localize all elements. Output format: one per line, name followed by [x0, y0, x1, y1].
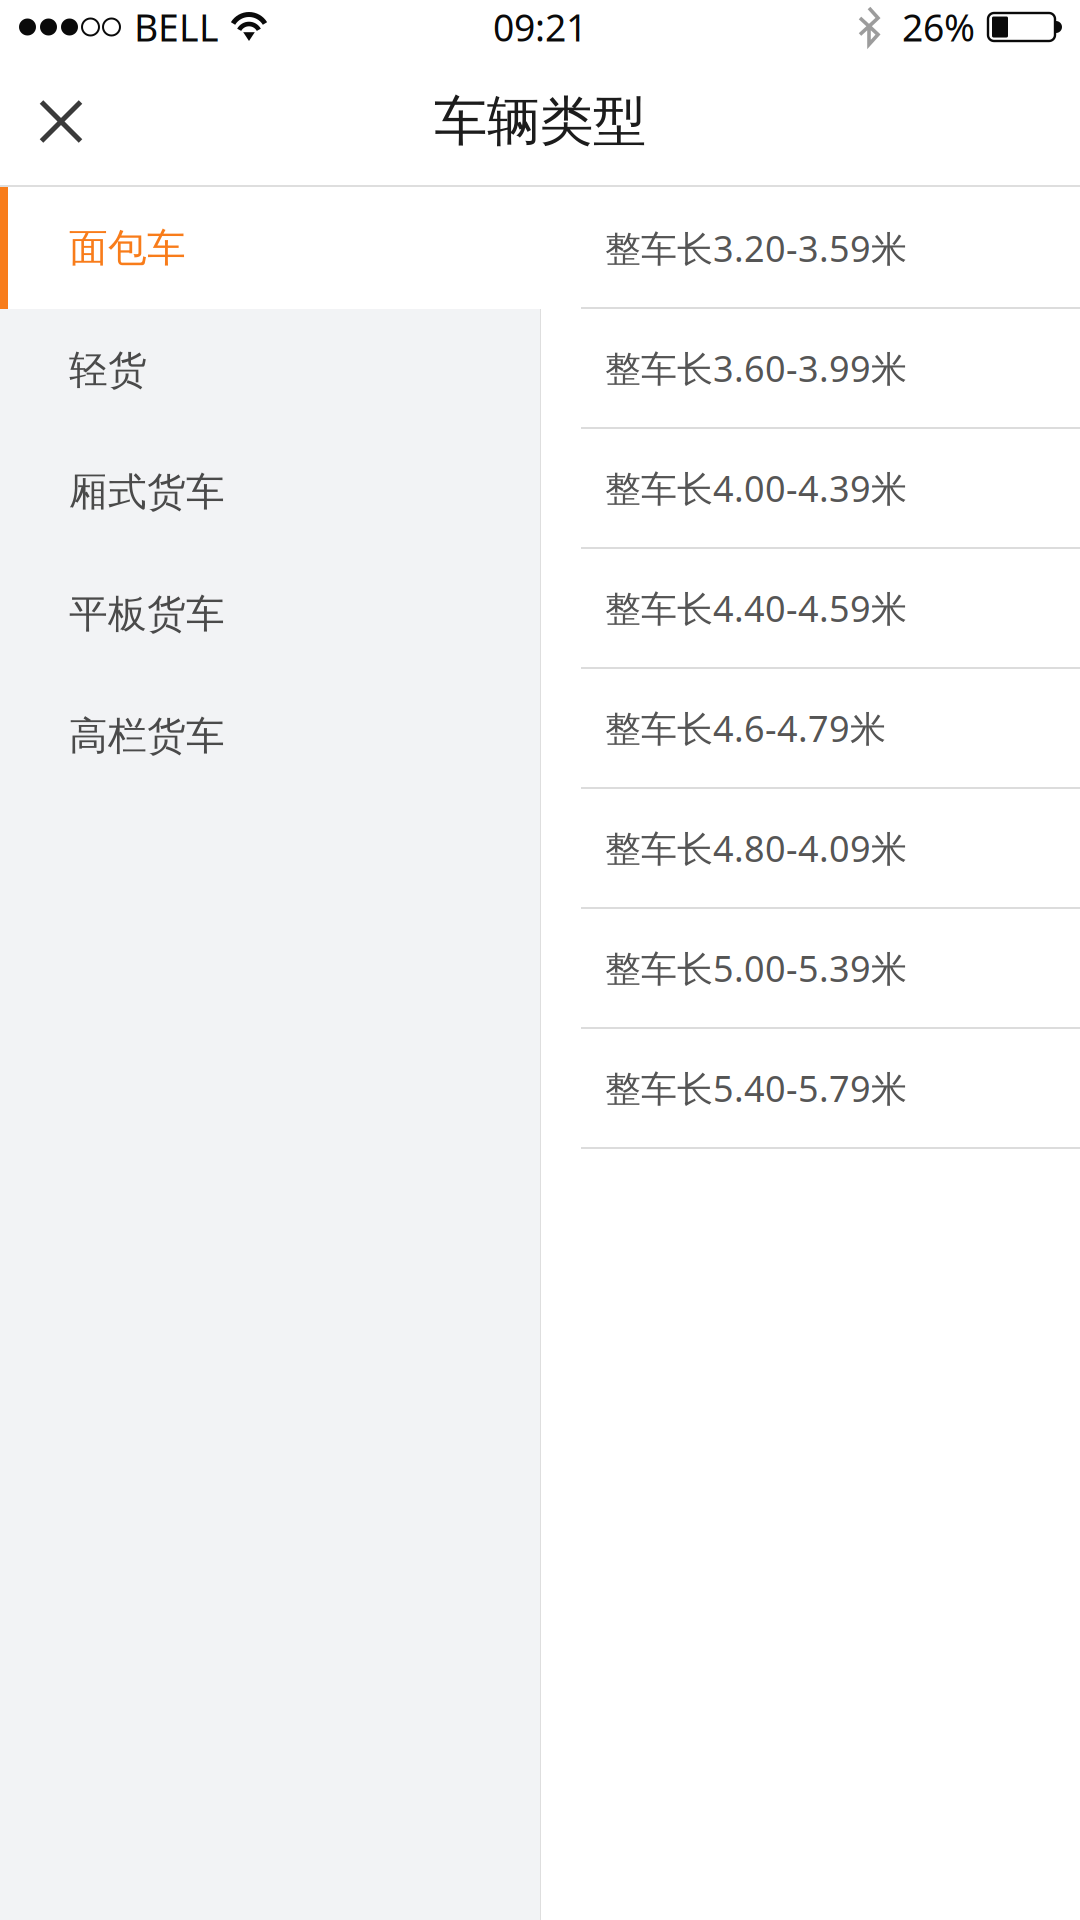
staticText: 整车长5.00-5.39米	[605, 944, 907, 992]
staticText: 面包车	[69, 224, 186, 272]
staticText: 整车长4.6-4.79米	[605, 704, 886, 752]
staticText: 整车长3.60-3.99米	[605, 344, 907, 392]
staticText: 09:21	[493, 2, 587, 52]
button[interactable]: 整车长4.80-4.09米	[541, 789, 1080, 909]
button[interactable]: 整车长4.6-4.79米	[541, 669, 1080, 789]
button[interactable]: Close	[0, 61, 122, 181]
staticText: 厢式货车	[69, 468, 225, 516]
button[interactable]: 整车长5.00-5.39米	[541, 909, 1080, 1029]
staticText: 整车长4.40-4.59米	[605, 584, 907, 632]
staticText: 整车长3.20-3.59米	[605, 224, 907, 272]
staticText: 26%	[902, 2, 975, 52]
button[interactable]: 高栏货车	[0, 675, 541, 797]
button[interactable]: 整车长5.40-5.79米	[541, 1029, 1080, 1149]
staticText: 整车长5.40-5.79米	[605, 1064, 907, 1112]
staticText: 车辆类型	[434, 89, 646, 154]
button[interactable]: 整车长4.00-4.39米	[541, 429, 1080, 549]
button[interactable]: 整车长3.60-3.99米	[541, 309, 1080, 429]
button[interactable]: 轻货	[0, 309, 541, 431]
button[interactable]: 厢式货车	[0, 431, 541, 553]
button[interactable]: 整车长3.20-3.59米	[541, 189, 1080, 309]
button[interactable]: 平板货车	[0, 553, 541, 675]
staticText: 平板货车	[69, 590, 225, 638]
staticText: 轻货	[69, 346, 147, 394]
staticText: BELL	[134, 2, 219, 52]
staticText: 高栏货车	[69, 712, 225, 760]
staticText: 整车长4.00-4.39米	[605, 464, 907, 512]
staticText: 整车长4.80-4.09米	[605, 824, 907, 872]
button[interactable]: 整车长4.40-4.59米	[541, 549, 1080, 669]
button[interactable]: 面包车	[0, 187, 541, 309]
